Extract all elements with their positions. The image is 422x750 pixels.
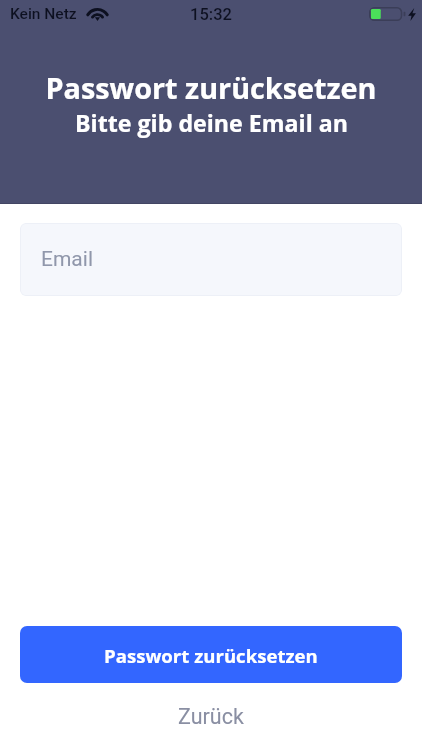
button[interactable]: Zurück — [0, 683, 422, 750]
staticText: 15:32 — [190, 5, 232, 24]
button[interactable]: Email — [20, 223, 402, 296]
staticText: Zurück — [178, 704, 244, 729]
staticText: Passwort zurücksetzen — [45, 68, 377, 107]
other: Battery charging — [369, 7, 404, 21]
other: Wi-Fi signal — [88, 8, 107, 21]
staticText: Kein Netz — [10, 5, 77, 23]
staticText: Email — [41, 247, 93, 272]
staticText: Bitte gib deine Email an — [75, 107, 348, 139]
button[interactable]: Passwort zurücksetzen — [20, 626, 402, 683]
staticText: Passwort zurücksetzen — [104, 643, 318, 668]
